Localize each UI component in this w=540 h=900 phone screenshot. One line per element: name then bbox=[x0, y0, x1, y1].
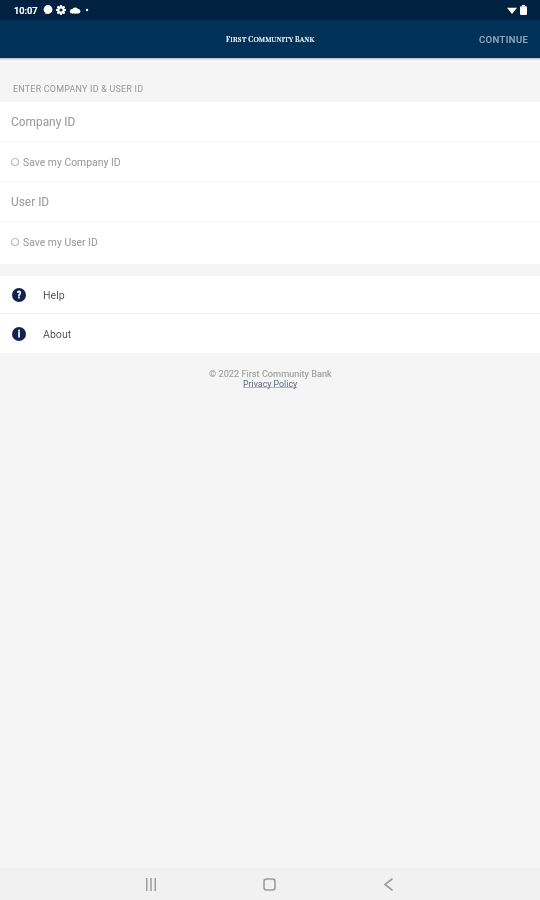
staticText: Help bbox=[43, 289, 65, 301]
staticText: Company ID bbox=[11, 115, 76, 129]
staticText: 10:07 bbox=[14, 5, 38, 16]
button[interactable]: Save my User ID bbox=[0, 222, 540, 262]
button[interactable]: ? bbox=[0, 276, 540, 313]
button[interactable]: Save my Company ID bbox=[0, 142, 540, 182]
staticText: © 2022 First Community Bank bbox=[209, 368, 332, 379]
staticText: ? bbox=[17, 290, 22, 300]
button[interactable]: i bbox=[0, 314, 540, 353]
button[interactable]: Company ID bbox=[0, 102, 540, 142]
staticText: First Community Bank bbox=[226, 34, 315, 44]
button[interactable]: Recents bbox=[131, 868, 171, 900]
button[interactable]: Home bbox=[249, 868, 289, 900]
button[interactable]: Back bbox=[368, 868, 408, 900]
staticText: About bbox=[43, 328, 72, 340]
staticText: ENTER COMPANY ID & USER ID bbox=[13, 84, 144, 94]
staticText: CONTINUE bbox=[479, 34, 529, 45]
staticText: Save my User ID bbox=[23, 236, 98, 248]
button[interactable]: User ID bbox=[0, 182, 540, 222]
staticText: i bbox=[18, 329, 21, 339]
button[interactable]: CONTINUE bbox=[468, 25, 540, 54]
staticText: User ID bbox=[11, 195, 50, 209]
button[interactable]: Privacy Policy bbox=[243, 379, 298, 389]
staticText: Save my Company ID bbox=[23, 156, 121, 168]
